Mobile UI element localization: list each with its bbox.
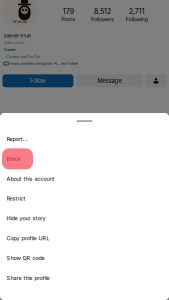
staticText: 2,711 (129, 7, 145, 16)
staticText: BY KHAN (12, 20, 27, 24)
button[interactable]: Hide your story (0, 208, 169, 228)
staticText: Video creator (3, 41, 24, 45)
staticText: Share this profile (6, 275, 49, 281)
staticText: Posts (61, 16, 75, 22)
button[interactable]: Restrict (0, 189, 169, 208)
staticText: Hide your story (6, 215, 45, 222)
button[interactable]: Report... (0, 129, 169, 149)
staticText: Creator (3, 48, 15, 52)
button[interactable]: Share this profile (0, 268, 169, 288)
button[interactable]: Follow (2, 74, 73, 87)
staticText: Followers (91, 16, 114, 22)
staticText: Block (6, 156, 20, 162)
staticText: www.youtube.com/@user-4l... and 1 other (10, 61, 78, 66)
staticText: Content Just For Fun (6, 54, 40, 59)
staticText: 179 (63, 7, 74, 16)
staticText: Following (126, 16, 148, 22)
staticText: 8,512 (94, 7, 111, 16)
staticText: Basheer Khan (3, 33, 31, 39)
button[interactable]: Copy profile URL (0, 228, 169, 248)
staticText: About this account (6, 175, 54, 182)
staticText: Message (97, 77, 121, 84)
staticText: Copy profile URL (6, 235, 49, 241)
staticText: Report... (6, 136, 28, 142)
button[interactable]: Message (76, 74, 142, 87)
staticText: Show QR code (6, 255, 44, 261)
button[interactable]: 179 (51, 7, 85, 22)
button[interactable]: 2,711 (120, 7, 154, 22)
button[interactable]: Show QR code (0, 248, 169, 268)
button[interactable]: 8,512 (85, 7, 120, 22)
button[interactable]: Block (0, 149, 169, 169)
button[interactable]: About this account (0, 169, 169, 189)
staticText: Follow (30, 77, 46, 84)
staticText: Restrict (6, 195, 25, 202)
button[interactable]: Discover people (145, 74, 166, 87)
